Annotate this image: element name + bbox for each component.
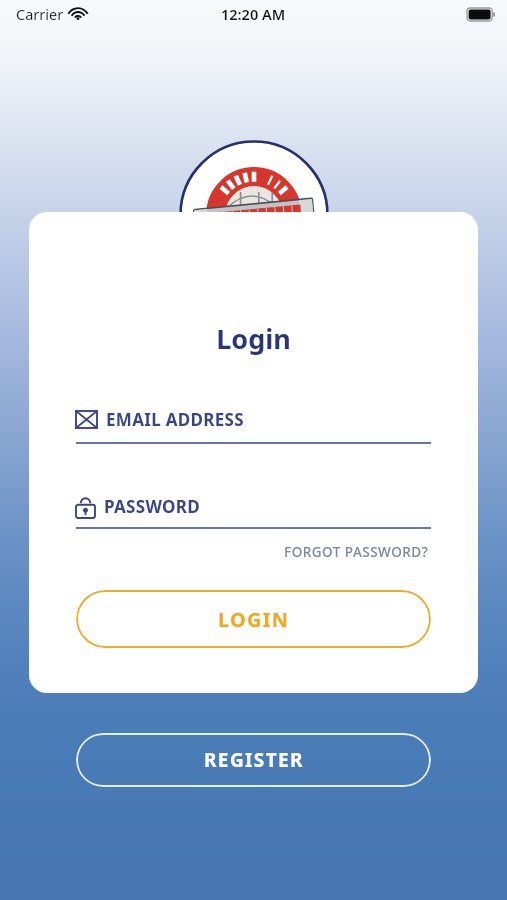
staticText: EMAIL ADDRESS <box>106 408 244 431</box>
staticText: FORGOT PASSWORD? <box>284 543 429 561</box>
staticText: REGISTER <box>204 747 304 773</box>
button[interactable]: EMAIL ADDRESS <box>29 408 478 444</box>
staticText: 12:20 AM <box>221 4 286 24</box>
staticText: Login <box>29 320 478 357</box>
button[interactable]: LOGIN <box>76 590 431 648</box>
staticText: PASSWORD <box>104 495 200 518</box>
button[interactable]: PASSWORD <box>29 495 478 529</box>
staticText: LOGIN <box>218 606 290 633</box>
button[interactable]: REGISTER <box>76 733 431 787</box>
staticText: Carrier <box>16 4 64 24</box>
button[interactable]: FORGOT PASSWORD? <box>282 540 431 564</box>
